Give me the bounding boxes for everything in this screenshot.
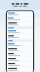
button[interactable] — [7, 62, 34, 67]
button[interactable] — [7, 47, 34, 52]
button[interactable] — [7, 11, 34, 16]
button[interactable] — [7, 29, 34, 34]
button[interactable] — [7, 34, 34, 39]
button[interactable] — [20, 6, 33, 11]
button[interactable] — [7, 21, 34, 26]
button[interactable] — [7, 52, 34, 57]
button[interactable] — [7, 57, 34, 62]
button[interactable] — [6, 16, 34, 21]
button[interactable] — [7, 67, 34, 72]
button[interactable] — [6, 42, 34, 47]
button[interactable] — [7, 6, 20, 11]
